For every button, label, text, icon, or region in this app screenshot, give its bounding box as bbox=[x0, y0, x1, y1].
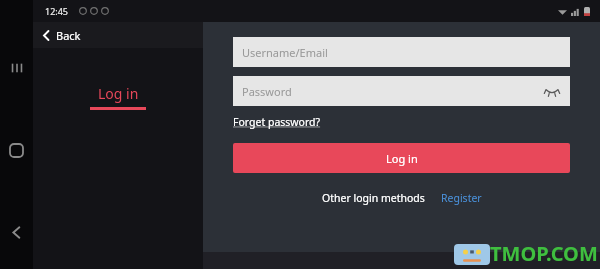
staticText: Username/Email bbox=[242, 45, 328, 60]
staticText: Password bbox=[242, 84, 292, 99]
staticText: Register bbox=[441, 191, 482, 205]
staticText: TMOP.COM bbox=[490, 240, 598, 267]
staticText: Log in bbox=[98, 84, 139, 103]
button[interactable]: Home bbox=[0, 130, 33, 170]
button[interactable]: Back bbox=[0, 212, 33, 252]
button[interactable]: Recents bbox=[0, 48, 33, 88]
staticText: Back bbox=[56, 28, 81, 43]
button[interactable]: Log in bbox=[233, 143, 570, 173]
staticText: Forget password? bbox=[233, 115, 321, 129]
staticText: 12:45 bbox=[45, 5, 69, 17]
button[interactable]: Register bbox=[441, 191, 482, 205]
button[interactable]: Other login methods bbox=[322, 191, 425, 205]
button[interactable]: Log in bbox=[90, 84, 146, 110]
staticText: Other login methods bbox=[322, 191, 425, 205]
button[interactable]: Forget password? bbox=[233, 115, 321, 129]
button[interactable]: Back bbox=[33, 22, 203, 48]
staticText: Log in bbox=[386, 151, 418, 166]
button[interactable]: Show password bbox=[539, 78, 565, 104]
